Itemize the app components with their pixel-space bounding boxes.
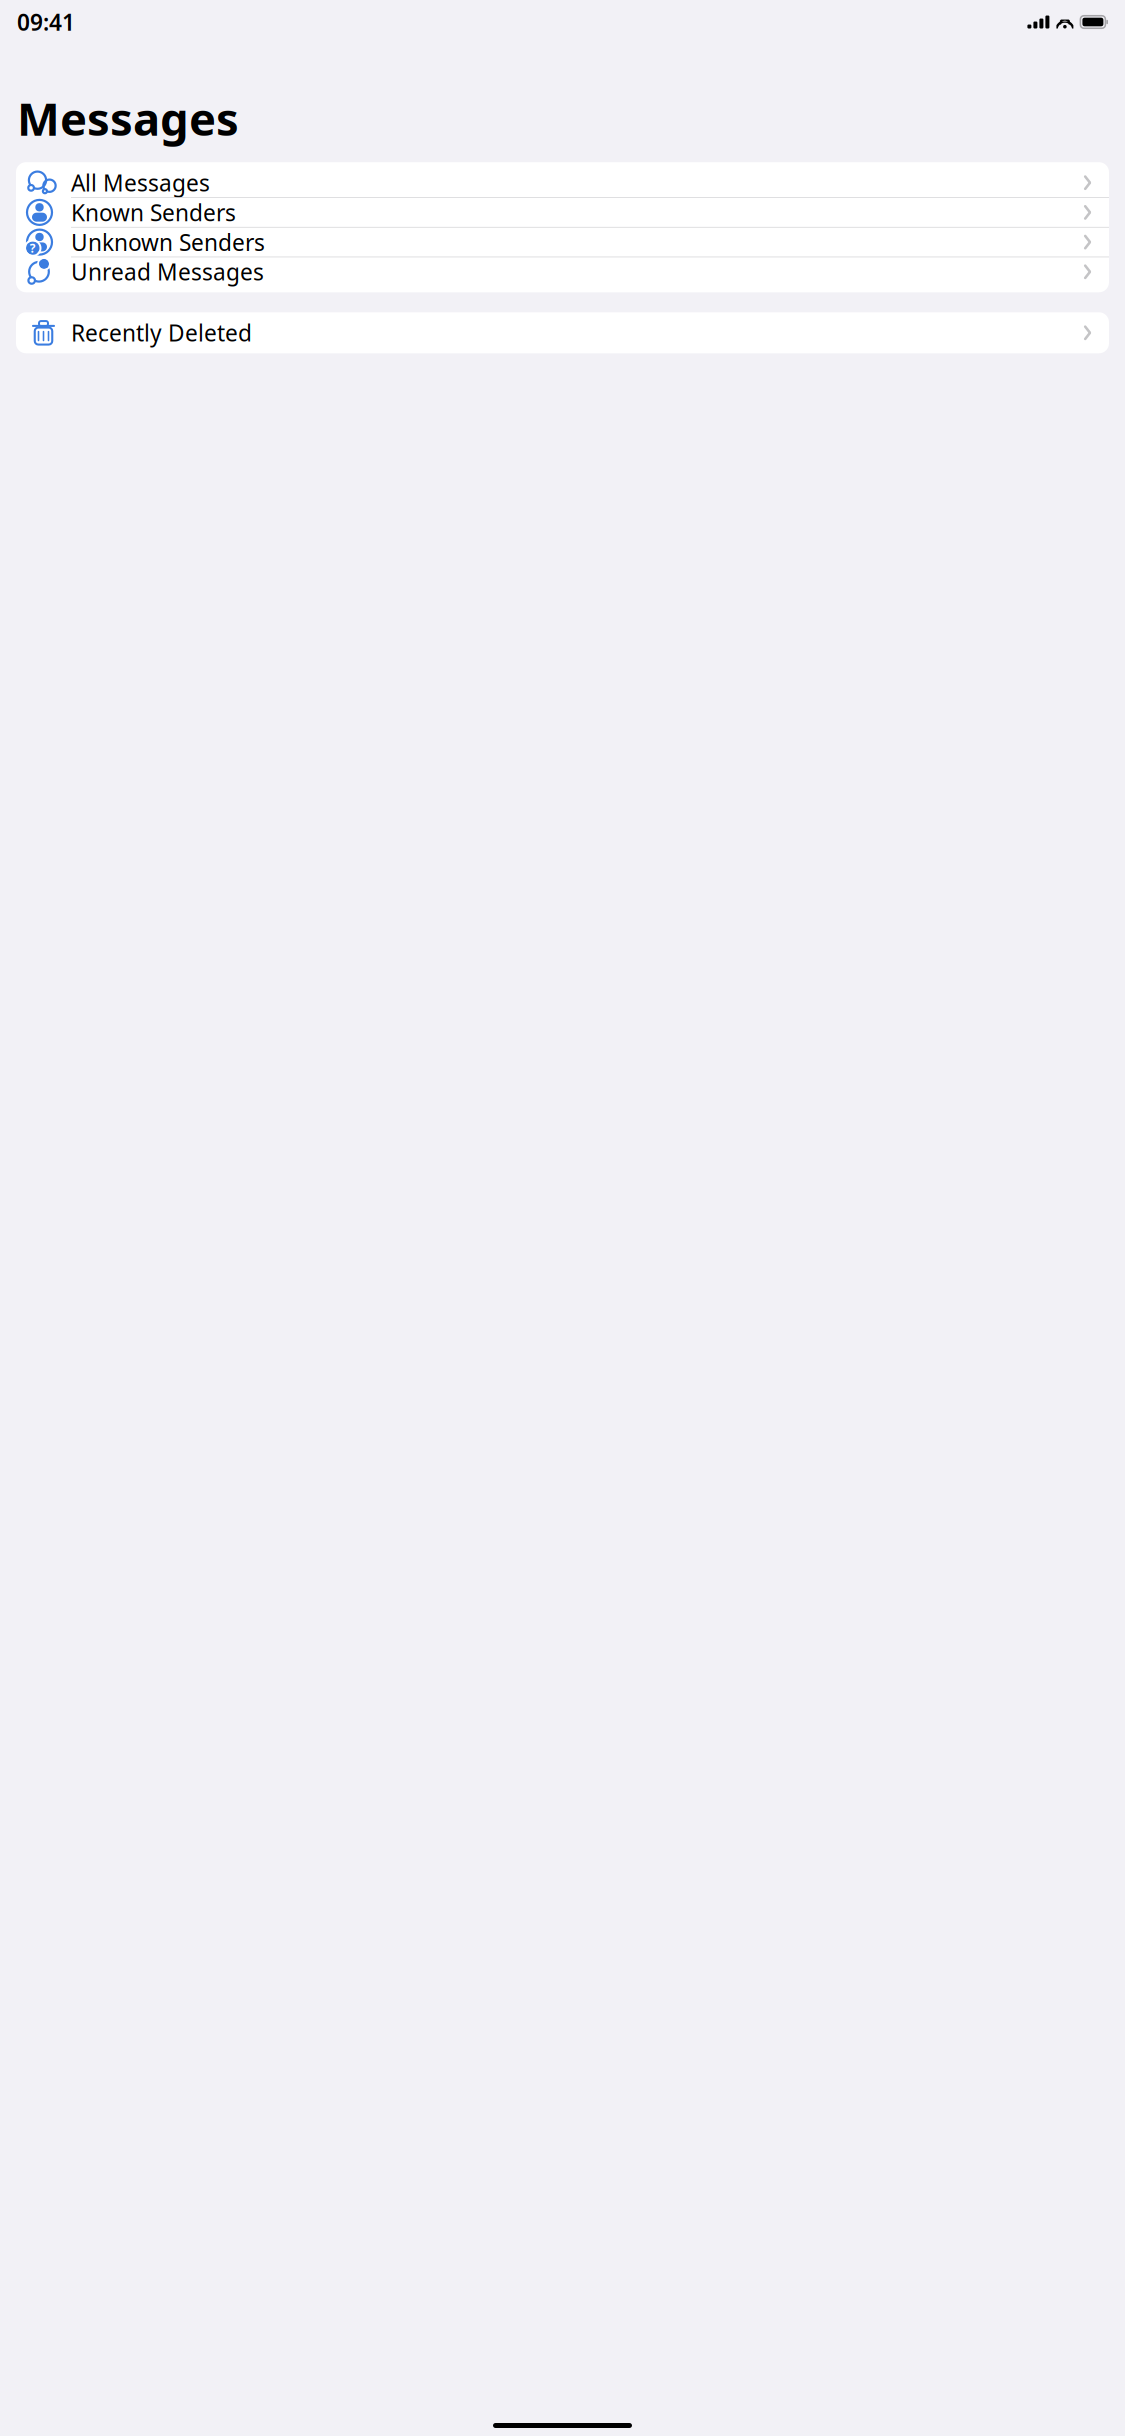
- button[interactable]: ?: [16, 228, 1109, 257]
- staticText: Messages: [17, 88, 239, 148]
- button[interactable]: Known Senders: [16, 198, 1109, 228]
- button[interactable]: Recently Deleted: [16, 318, 1109, 347]
- staticText: Unread Messages: [71, 257, 264, 287]
- button[interactable]: All Messages: [16, 168, 1109, 198]
- staticText: Known Senders: [71, 197, 236, 227]
- staticText: 09:41: [17, 7, 75, 37]
- button[interactable]: Unread Messages: [16, 257, 1109, 286]
- staticText: All Messages: [71, 168, 210, 198]
- staticText: Recently Deleted: [71, 318, 252, 348]
- staticText: ?: [30, 240, 36, 256]
- staticText: Unknown Senders: [71, 227, 265, 257]
